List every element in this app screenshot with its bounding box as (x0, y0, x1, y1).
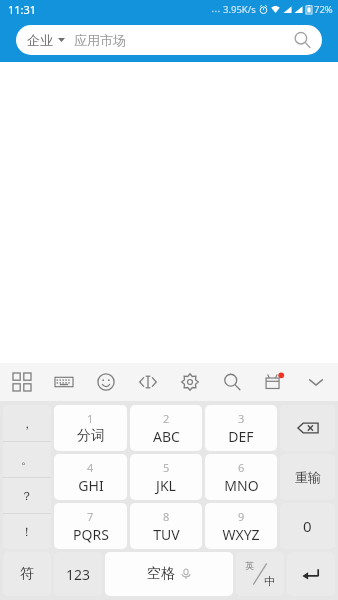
staticText: ABC (153, 427, 180, 446)
staticText: PQRS (73, 525, 109, 544)
button[interactable]: 重输 (280, 454, 335, 500)
staticText: 5 (163, 460, 170, 475)
other: Search (293, 31, 311, 49)
staticText: 8 (163, 509, 170, 524)
button[interactable]: 8 (130, 503, 202, 549)
button[interactable]: Enter (287, 552, 335, 596)
staticText: 1 (87, 411, 94, 426)
staticText: JKL (156, 476, 176, 495)
button[interactable]: 5 (130, 454, 202, 500)
staticText: 。 (21, 452, 33, 467)
staticText: 空格 (147, 565, 175, 583)
staticText: 分词 (77, 427, 105, 445)
button[interactable]: Emoji (89, 365, 123, 399)
staticText: 企业 (27, 32, 53, 48)
staticText: 0 (303, 516, 312, 536)
button[interactable]: 4 (54, 454, 127, 500)
button[interactable]: 1 (54, 405, 127, 451)
button[interactable]: ？ (3, 478, 51, 513)
button[interactable]: Hide keyboard (299, 365, 333, 399)
staticText: TUV (153, 525, 180, 544)
button[interactable]: 6 (205, 454, 277, 500)
staticText: WXYZ (222, 525, 260, 544)
staticText: 中 (264, 574, 275, 588)
button[interactable]: Backspace (280, 405, 335, 451)
button[interactable]: 123 (54, 552, 102, 596)
staticText: 2 (163, 411, 170, 426)
staticText: 符 (20, 565, 34, 583)
staticText: 11:31 (8, 2, 37, 17)
staticText: 4 (87, 460, 94, 475)
button[interactable]: ， (3, 405, 51, 441)
button[interactable]: Keyboard layout (47, 365, 81, 399)
staticText: 英 (245, 560, 254, 571)
button[interactable]: Themes (257, 365, 291, 399)
staticText: 重输 (295, 469, 321, 485)
staticText: ！ (21, 524, 33, 539)
button[interactable]: 企业 (16, 25, 322, 55)
button[interactable]: Settings (173, 365, 207, 399)
button[interactable]: 0 (280, 503, 335, 549)
button[interactable]: 7 (54, 503, 127, 549)
button[interactable]: 符 (3, 552, 51, 596)
button[interactable]: 空格 (105, 552, 233, 596)
button[interactable]: 2 (130, 405, 202, 451)
staticText: 应用市场 (74, 32, 126, 48)
button[interactable]: Search (215, 365, 249, 399)
button[interactable]: Apps (5, 365, 39, 399)
button[interactable]: 9 (205, 503, 277, 549)
staticText: GHI (78, 476, 104, 495)
button[interactable]: 。 (3, 442, 51, 477)
staticText: 123 (66, 565, 91, 584)
staticText: 72% (314, 3, 333, 16)
staticText: MNO (224, 476, 259, 495)
staticText: DEF (228, 427, 254, 446)
staticText: 3.95K/s (223, 3, 256, 16)
staticText: 3 (238, 411, 245, 426)
staticText: ， (21, 416, 33, 431)
staticText: ？ (21, 488, 33, 503)
staticText: 9 (238, 509, 245, 524)
staticText: 6 (238, 460, 245, 475)
button[interactable]: 3 (205, 405, 277, 451)
button[interactable]: Switch English Chinese input (236, 552, 284, 596)
button[interactable]: ！ (3, 514, 51, 549)
button[interactable]: Move cursor (131, 365, 165, 399)
staticText: 7 (87, 509, 94, 524)
